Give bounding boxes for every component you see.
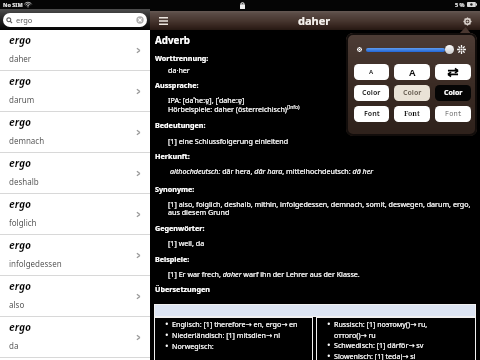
staticText: ergo: [9, 197, 32, 211]
staticText: ergo: [9, 279, 32, 293]
staticText: darum: [9, 94, 35, 105]
staticText: Niederländisch: [1] mitsdien→ nl: [172, 330, 281, 340]
staticText: A: [369, 68, 374, 76]
button[interactable]: ergo: [0, 194, 150, 235]
staticText: ergo: [9, 33, 32, 47]
staticText: also: [9, 299, 25, 310]
staticText: Font: [404, 109, 420, 119]
button[interactable]: ergo: [0, 71, 150, 112]
staticText: Adverb: [155, 34, 190, 47]
staticText: Übersetzungen: [155, 284, 210, 294]
button[interactable]: ergo: [0, 235, 150, 276]
staticText: ergo: [16, 15, 33, 25]
staticText: ergo: [9, 74, 32, 88]
staticText: IPA: [daˈheːɐ̯], [ˈdaheːɐ̯]: [168, 95, 245, 105]
staticText: daher: [298, 13, 331, 28]
staticText: Worttrennung:: [155, 53, 209, 63]
staticText: Schwedisch: [1] därför→ sv: [334, 340, 424, 350]
staticText: Aussprache:: [155, 80, 199, 90]
staticText: Englisch: [1] therefore→ en, ergo→ en: [172, 319, 298, 329]
staticText: [1] Er war frech, daher warf ihn der Leh…: [168, 269, 360, 279]
staticText: ergo: [9, 238, 32, 252]
staticText: No SIM: [3, 1, 23, 8]
staticText: daher: [9, 53, 32, 64]
staticText: Color: [444, 88, 463, 98]
button[interactable]: ergo: [3, 13, 147, 27]
staticText: Color: [403, 88, 422, 98]
staticText: deshalb: [9, 176, 39, 187]
button[interactable]: A: [394, 64, 430, 80]
button[interactable]: Font: [354, 106, 389, 122]
button[interactable]: ergo: [0, 30, 150, 71]
staticText: Font: [445, 109, 462, 119]
button[interactable]: Color: [435, 85, 471, 101]
button[interactable]: A: [354, 64, 389, 80]
staticText: infolgedessen: [9, 258, 62, 269]
staticText: [1] also, folglich, deshalb, mithin, inf…: [168, 199, 471, 209]
staticText: ergo: [9, 115, 32, 129]
button[interactable]: ergo: [0, 276, 150, 317]
staticText: Slowenisch: [1] tedaj→ sl: [334, 351, 416, 360]
staticText: Bedeutungen:: [155, 120, 206, 130]
staticText: da·her: [168, 65, 190, 75]
staticText: Hörbeispiele: daher (österreichisch)(Inf…: [168, 104, 300, 114]
staticText: оттого()→ ru: [334, 330, 376, 340]
staticText: Beispiele:: [155, 254, 190, 264]
staticText: da: [9, 340, 19, 351]
staticText: Color: [362, 88, 381, 98]
staticText: A: [409, 66, 416, 79]
staticText: demnach: [9, 135, 45, 146]
button[interactable]: Menu: [156, 14, 170, 28]
button[interactable]: [435, 64, 471, 80]
staticText: 5 %: [455, 1, 465, 8]
staticText: Synonyme:: [155, 184, 195, 194]
button[interactable]: Font: [435, 106, 471, 122]
button[interactable]: Color: [394, 85, 430, 101]
staticText: Font: [364, 109, 380, 119]
staticText: Norwegisch:: [172, 341, 214, 351]
staticText: [1] weil, da: [168, 238, 205, 248]
button[interactable]: ergo: [0, 317, 150, 358]
staticText: ergo: [9, 156, 32, 170]
button[interactable]: Font: [394, 106, 430, 122]
staticText: Gegenwörter:: [155, 223, 205, 233]
staticText: folglich: [9, 217, 37, 228]
staticText: ergo: [9, 320, 32, 334]
button[interactable]: Settings: [460, 14, 474, 28]
staticText: [1] eine Schlussfolgerung einleitend: [168, 136, 289, 146]
staticText: althochdeutsch: dār hera, dār hara, mitt…: [170, 166, 374, 176]
staticText: aus diesem Grund: [168, 207, 230, 217]
button[interactable]: ergo: [0, 112, 150, 153]
button[interactable]: ergo: [0, 153, 150, 194]
staticText: Russisch: [1] поэтому()→ ru,: [334, 319, 428, 329]
staticText: Herkunft:: [155, 151, 190, 161]
button[interactable]: Color: [354, 85, 389, 101]
